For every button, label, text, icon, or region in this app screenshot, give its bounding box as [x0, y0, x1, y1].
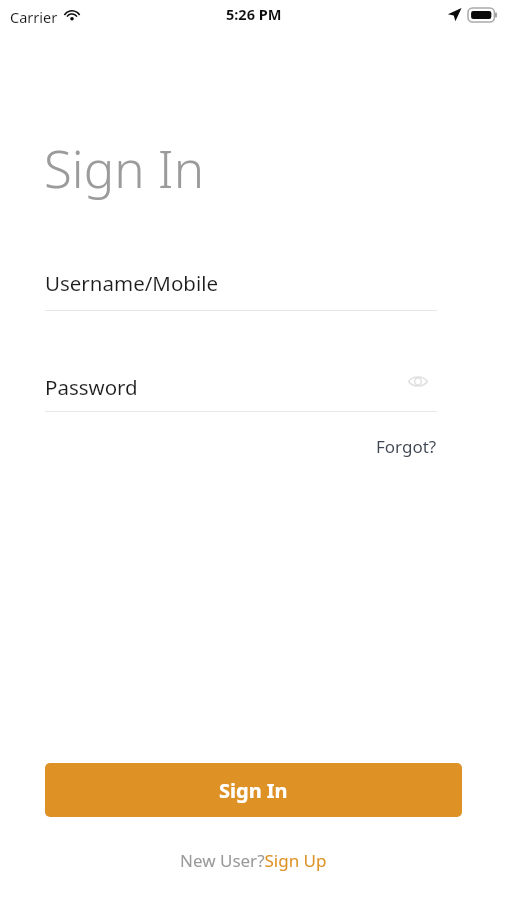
button[interactable]: Forgot? — [357, 430, 437, 462]
staticText: Sign In — [44, 133, 205, 202]
staticText: Forgot? — [376, 435, 437, 458]
button[interactable]: Sign In — [45, 763, 462, 817]
staticText: 5:26 PM — [226, 4, 282, 24]
staticText: Carrier — [10, 7, 58, 27]
staticText: Sign In — [219, 777, 288, 804]
button[interactable]: New User?Sign Up — [176, 847, 331, 874]
button[interactable]: Show password — [402, 366, 434, 396]
staticText: New User?Sign Up — [180, 849, 327, 872]
staticText: Username/Mobile — [45, 269, 219, 297]
staticText: Password — [45, 373, 138, 401]
